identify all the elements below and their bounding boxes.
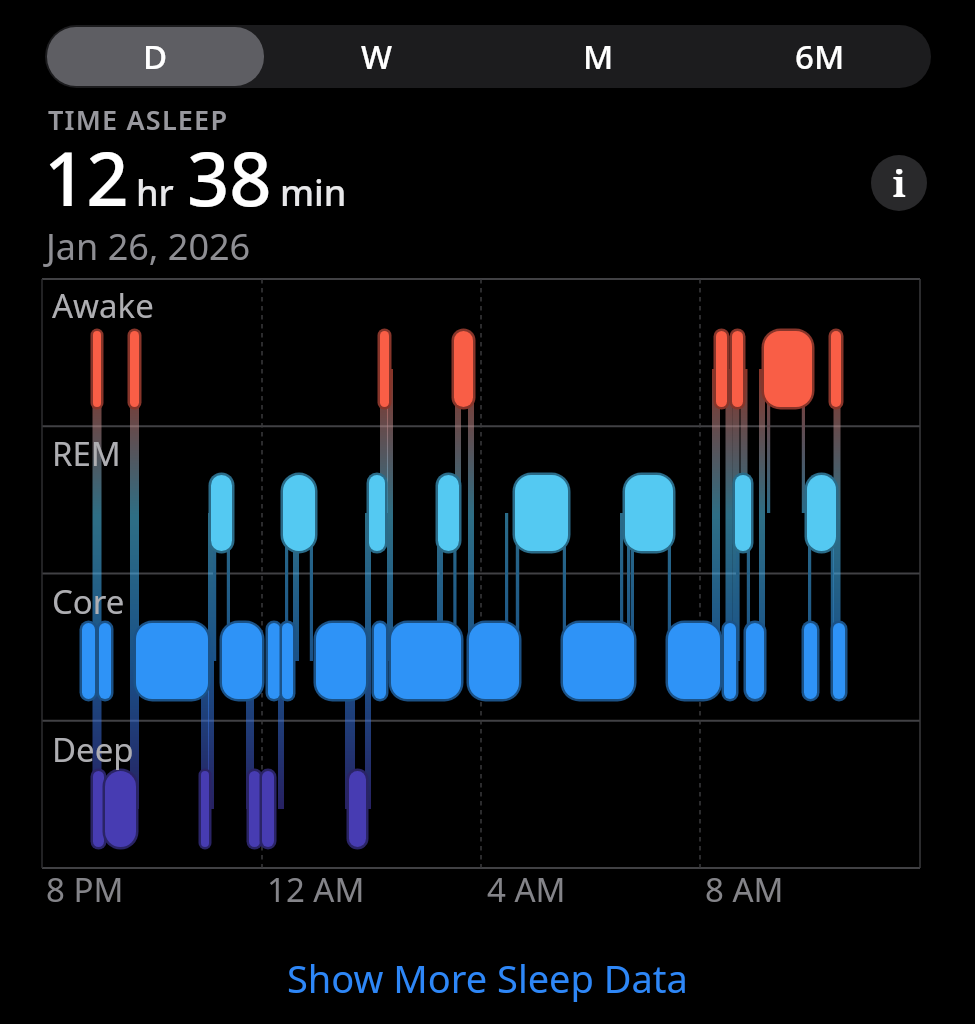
button[interactable]: D xyxy=(47,27,264,86)
button[interactable]: i xyxy=(871,155,927,211)
staticText: Deep xyxy=(52,727,134,772)
staticText: 12 xyxy=(44,127,129,228)
button[interactable]: W xyxy=(268,27,485,86)
staticText: 8 PM xyxy=(46,867,124,912)
staticText: i xyxy=(893,159,906,208)
staticText: Jan 26, 2026 xyxy=(46,222,251,271)
staticText: 6M xyxy=(795,34,845,79)
staticText: REM xyxy=(52,431,121,476)
staticText: hr xyxy=(136,168,174,217)
staticText: Core xyxy=(52,579,125,624)
staticText: 4 AM xyxy=(487,867,566,912)
staticText: 38 xyxy=(187,127,272,228)
staticText: Show More Sleep Data xyxy=(287,952,688,1004)
staticText: 8 AM xyxy=(705,867,784,912)
staticText: Awake xyxy=(52,283,154,328)
button[interactable]: 6M xyxy=(711,27,929,86)
staticText: 12 AM xyxy=(267,867,365,912)
staticText: min xyxy=(280,168,347,217)
button[interactable]: M xyxy=(489,27,707,86)
staticText: M xyxy=(583,34,614,79)
button[interactable]: Show More Sleep Data xyxy=(281,946,694,1010)
staticText: W xyxy=(361,34,393,79)
staticText: D xyxy=(143,34,168,79)
staticText: TIME ASLEEP xyxy=(48,101,229,138)
